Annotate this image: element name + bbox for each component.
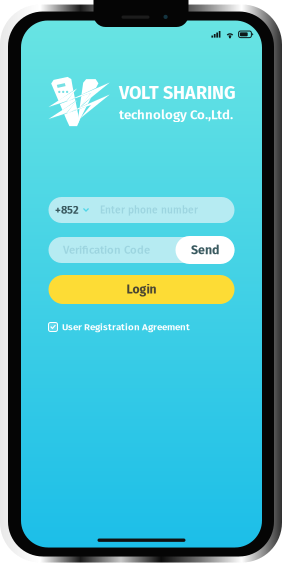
staticText: technology Co.,Ltd.	[119, 107, 233, 123]
button[interactable]: Login	[48, 275, 234, 304]
button[interactable]: User Registration Agreement	[48, 320, 234, 334]
staticText: Enter phone number	[100, 204, 198, 216]
staticText: VOLT SHARING	[119, 82, 236, 104]
staticText: Send	[191, 243, 219, 257]
button[interactable]: Send	[175, 236, 234, 264]
staticText: Verification Code	[63, 243, 150, 257]
staticText: +852	[55, 203, 79, 216]
staticText: User Registration Agreement	[62, 321, 190, 333]
staticText: Login	[126, 282, 156, 297]
